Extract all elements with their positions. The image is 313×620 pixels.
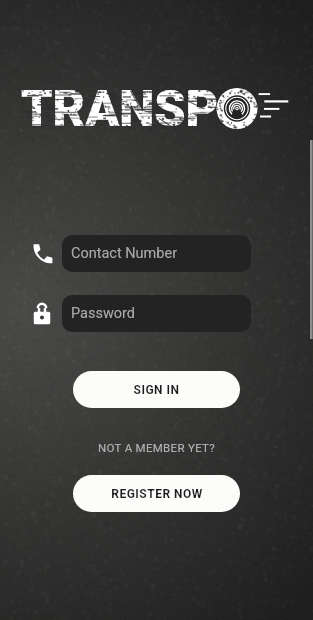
staticText: SIGN IN	[133, 383, 180, 397]
staticText: TRANSP	[21, 80, 219, 139]
staticText: REGISTER NOW	[111, 487, 203, 501]
button[interactable]: Password	[62, 295, 251, 332]
staticText: Contact Number	[71, 245, 178, 262]
button[interactable]: SIGN IN	[73, 371, 240, 408]
staticText: NOT A MEMBER YET?	[98, 441, 216, 454]
button[interactable]: REGISTER NOW	[73, 475, 240, 512]
button[interactable]: Contact Number	[62, 235, 251, 272]
staticText: Password	[71, 305, 136, 322]
